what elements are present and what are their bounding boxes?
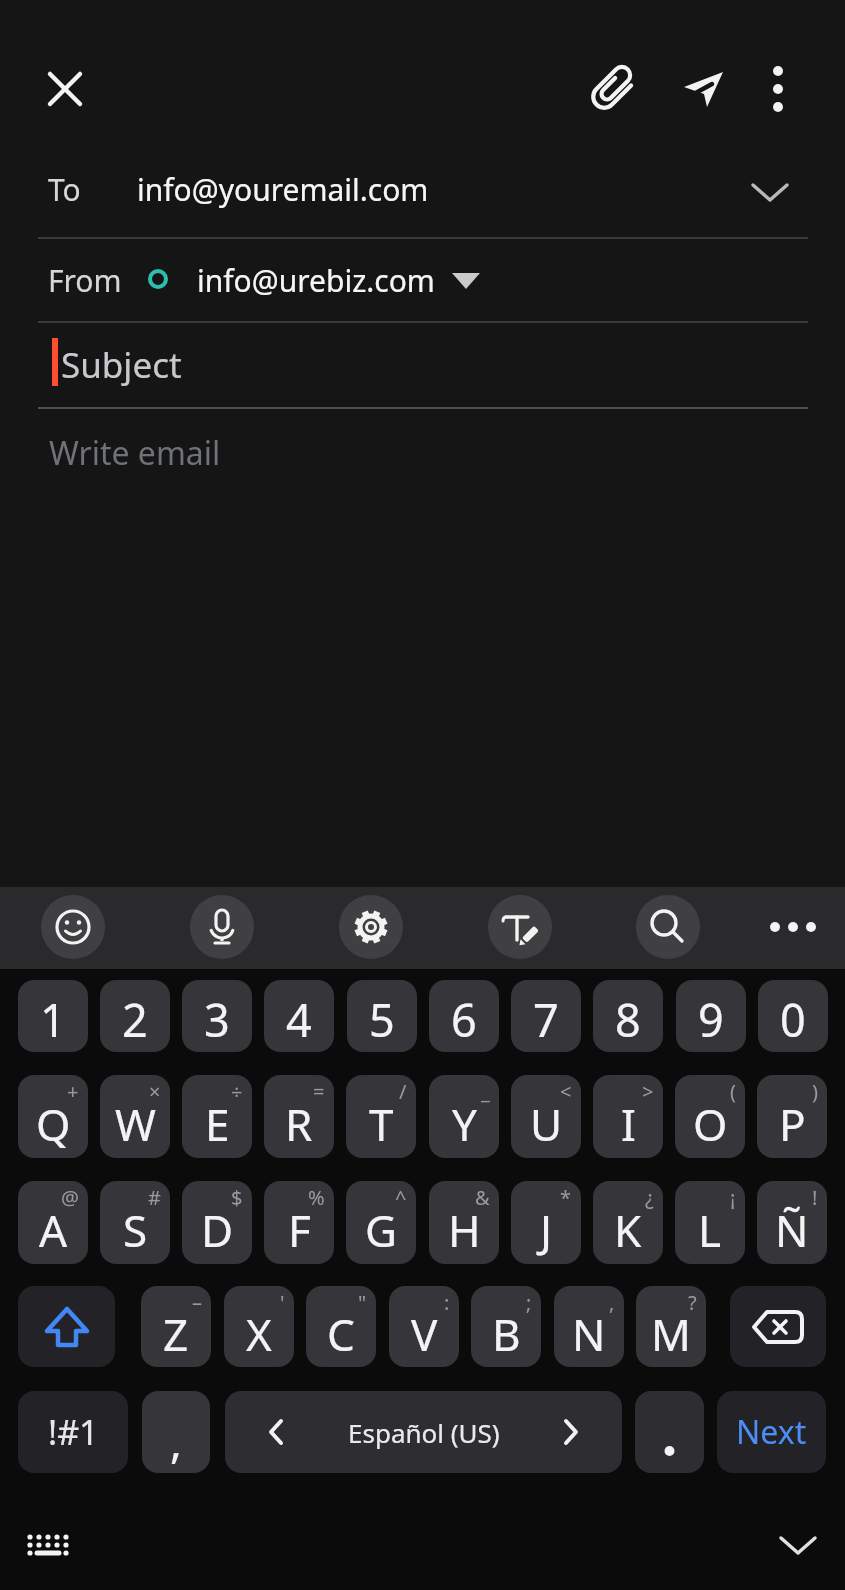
staticText: ¡ bbox=[730, 1184, 736, 1211]
staticText: V bbox=[411, 1304, 438, 1364]
staticText: Subject bbox=[61, 341, 182, 389]
staticText: / bbox=[399, 1078, 407, 1105]
button[interactable]: I bbox=[593, 1075, 663, 1158]
staticText: @ bbox=[61, 1184, 79, 1211]
button[interactable]: 3 bbox=[182, 980, 252, 1052]
button[interactable]: Y bbox=[429, 1075, 499, 1158]
button[interactable] bbox=[33, 57, 97, 121]
button[interactable]: J bbox=[511, 1181, 581, 1264]
staticText: ) bbox=[812, 1078, 818, 1105]
staticText: From bbox=[48, 260, 122, 301]
button[interactable]: K bbox=[593, 1181, 663, 1264]
staticText: 0 bbox=[780, 989, 806, 1050]
staticText: _ bbox=[481, 1078, 490, 1105]
button[interactable] bbox=[18, 1286, 115, 1367]
button[interactable]: Next bbox=[717, 1391, 826, 1473]
button[interactable]: N bbox=[554, 1286, 624, 1367]
button[interactable] bbox=[746, 57, 810, 121]
staticText: > bbox=[642, 1078, 654, 1105]
button[interactable]: , bbox=[142, 1391, 210, 1473]
button[interactable]: 6 bbox=[429, 980, 499, 1052]
staticText: !#1 bbox=[48, 1409, 99, 1455]
staticText: 1 bbox=[40, 989, 66, 1050]
button[interactable]: S bbox=[100, 1181, 170, 1264]
button[interactable]: 4 bbox=[264, 980, 334, 1052]
staticText: S bbox=[123, 1200, 148, 1260]
button[interactable] bbox=[20, 1517, 76, 1573]
button[interactable]: 1 bbox=[18, 980, 88, 1052]
button[interactable]: A bbox=[18, 1181, 88, 1264]
button[interactable] bbox=[765, 899, 821, 955]
button[interactable]: X bbox=[224, 1286, 294, 1367]
button[interactable]: 0 bbox=[758, 980, 828, 1052]
button[interactable]: Ñ bbox=[757, 1181, 827, 1264]
button[interactable] bbox=[0, 238, 845, 322]
button[interactable]: C bbox=[306, 1286, 376, 1367]
button[interactable]: F bbox=[264, 1181, 334, 1264]
button[interactable] bbox=[742, 164, 798, 220]
staticText: B bbox=[492, 1304, 521, 1364]
staticText: × bbox=[149, 1078, 161, 1105]
button[interactable]: Q bbox=[18, 1075, 88, 1158]
button[interactable] bbox=[190, 895, 254, 959]
staticText: 4 bbox=[286, 989, 312, 1050]
staticText: " bbox=[358, 1289, 367, 1316]
button[interactable]: U bbox=[511, 1075, 581, 1158]
staticText: U bbox=[530, 1094, 563, 1154]
button[interactable]: Z bbox=[141, 1286, 211, 1367]
button[interactable] bbox=[635, 1391, 704, 1473]
button[interactable]: V bbox=[389, 1286, 459, 1367]
button[interactable]: R bbox=[264, 1075, 334, 1158]
staticText: info@urebiz.com bbox=[197, 260, 435, 301]
button[interactable] bbox=[730, 1286, 826, 1367]
button[interactable]: W bbox=[100, 1075, 170, 1158]
staticText: 6 bbox=[451, 989, 477, 1050]
staticText: 2 bbox=[122, 989, 148, 1050]
button[interactable]: T bbox=[346, 1075, 416, 1158]
button[interactable] bbox=[41, 895, 105, 959]
button[interactable] bbox=[0, 409, 845, 887]
staticText: Español (US) bbox=[348, 1415, 500, 1450]
staticText: ÷ bbox=[231, 1078, 243, 1105]
staticText: info@youremail.com bbox=[137, 169, 429, 210]
button[interactable]: H bbox=[429, 1181, 499, 1264]
button[interactable]: D bbox=[182, 1181, 252, 1264]
staticText: T bbox=[369, 1094, 394, 1154]
button[interactable]: Español (US) bbox=[225, 1391, 622, 1473]
button[interactable] bbox=[0, 323, 845, 407]
staticText: % bbox=[308, 1184, 325, 1211]
staticText: & bbox=[475, 1184, 490, 1211]
staticText: ; bbox=[526, 1289, 532, 1316]
staticText: E bbox=[205, 1094, 230, 1154]
button[interactable] bbox=[339, 895, 403, 959]
button[interactable]: O bbox=[675, 1075, 745, 1158]
staticText: # bbox=[148, 1184, 161, 1211]
button[interactable]: G bbox=[346, 1181, 416, 1264]
staticText: W bbox=[115, 1094, 156, 1154]
button[interactable]: 5 bbox=[347, 980, 417, 1052]
staticText: Ñ bbox=[775, 1200, 809, 1260]
staticText: 5 bbox=[369, 989, 395, 1050]
button[interactable] bbox=[580, 57, 644, 121]
staticText: , bbox=[170, 1411, 182, 1471]
button[interactable]: 2 bbox=[100, 980, 170, 1052]
button[interactable] bbox=[671, 57, 735, 121]
staticText: Next bbox=[736, 1410, 807, 1454]
staticText: J bbox=[540, 1200, 553, 1260]
button[interactable]: 9 bbox=[676, 980, 746, 1052]
button[interactable]: B bbox=[471, 1286, 541, 1367]
button[interactable]: 8 bbox=[593, 980, 663, 1052]
button[interactable]: M bbox=[636, 1286, 706, 1367]
button[interactable] bbox=[770, 1517, 826, 1573]
staticText: ^ bbox=[395, 1184, 407, 1211]
staticText: Y bbox=[452, 1094, 477, 1154]
staticText: : bbox=[444, 1289, 450, 1316]
button[interactable]: L bbox=[675, 1181, 745, 1264]
button[interactable] bbox=[636, 895, 700, 959]
button[interactable] bbox=[488, 895, 552, 959]
button[interactable]: 7 bbox=[511, 980, 581, 1052]
button[interactable]: !#1 bbox=[18, 1391, 128, 1473]
button[interactable] bbox=[0, 140, 845, 238]
button[interactable]: P bbox=[757, 1075, 827, 1158]
button[interactable]: E bbox=[182, 1075, 252, 1158]
